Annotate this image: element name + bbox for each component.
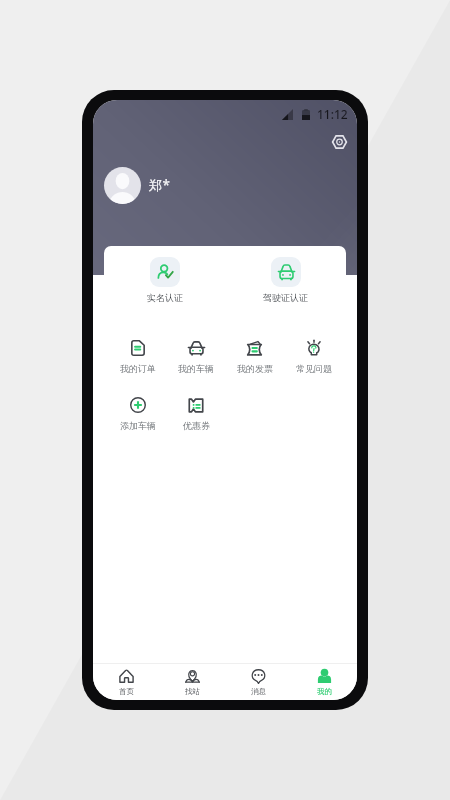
- button[interactable]: 实名认证: [104, 246, 225, 314]
- staticText: 首页: [119, 687, 134, 696]
- staticText: 我的: [317, 687, 332, 696]
- staticText: 我的发票: [237, 363, 273, 374]
- button[interactable]: 找站: [159, 664, 225, 696]
- button[interactable]: 添加车辆: [109, 388, 167, 431]
- staticText: 找站: [185, 687, 200, 696]
- staticText: 我的订单: [120, 363, 156, 374]
- staticText: 消息: [251, 687, 266, 696]
- staticText: 添加车辆: [120, 420, 156, 431]
- staticText: 实名认证: [147, 292, 183, 303]
- button[interactable]: 郑*: [104, 166, 170, 204]
- button[interactable]: 优惠券: [167, 388, 225, 431]
- button[interactable]: 消息: [225, 664, 291, 696]
- button[interactable]: 我的车辆: [167, 331, 225, 374]
- button[interactable]: 我的订单: [109, 331, 167, 374]
- button[interactable]: 常见问题: [284, 331, 343, 374]
- staticText: 常见问题: [296, 363, 332, 374]
- staticText: 优惠券: [183, 420, 210, 431]
- staticText: 驾驶证认证: [263, 292, 308, 303]
- button[interactable]: Settings: [325, 128, 353, 156]
- staticText: 郑*: [149, 176, 170, 194]
- staticText: 11:12: [317, 106, 348, 122]
- button[interactable]: 首页: [93, 664, 159, 696]
- staticText: 我的车辆: [178, 363, 214, 374]
- button[interactable]: 我的: [291, 664, 357, 696]
- button[interactable]: 驾驶证认证: [225, 246, 346, 314]
- button[interactable]: 我的发票: [225, 331, 284, 374]
